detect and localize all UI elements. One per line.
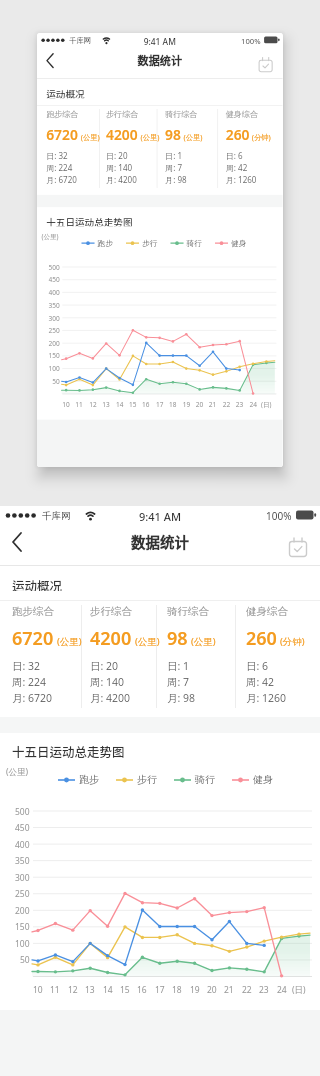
staticText: 300 [48, 314, 60, 322]
staticText: 20 [196, 400, 203, 408]
staticText: 200 [15, 905, 30, 916]
staticText: 13 [85, 984, 95, 995]
staticText: 周: 140 [106, 163, 133, 173]
staticText: 步行 [142, 238, 157, 248]
button[interactable] [2, 528, 36, 558]
staticText: 14 [103, 984, 113, 995]
staticText: 日: 1 [167, 659, 190, 673]
staticText: 运动概况 [12, 576, 63, 591]
staticText: 17 [156, 400, 164, 408]
staticText: 骑行 [195, 773, 215, 786]
staticText: 月: 1260 [226, 175, 257, 186]
staticText: (公里) [141, 132, 160, 142]
staticText: 跑步综合 [46, 109, 78, 119]
button[interactable]: 步行 [126, 238, 157, 248]
staticText: 运动概况 [46, 87, 85, 98]
staticText: 月: 98 [167, 691, 196, 705]
staticText: 21 [224, 984, 234, 995]
staticText: 24 [249, 400, 257, 408]
staticText: 9:41 AM [139, 509, 182, 523]
staticText: 350 [48, 301, 60, 309]
staticText: 16 [137, 984, 147, 995]
staticText: 350 [15, 855, 30, 866]
staticText: 日: 6 [226, 150, 243, 161]
staticText: 月: 6720 [12, 691, 53, 705]
button[interactable]: 步行 [116, 773, 157, 786]
staticText: 260 [226, 125, 249, 144]
button[interactable]: 跑步 [81, 238, 113, 248]
staticText: 骑行综合 [167, 605, 209, 618]
staticText: (分钟) [252, 132, 271, 142]
staticText: (公里) [81, 132, 100, 142]
staticText: (公里) [183, 132, 203, 142]
staticText: 50 [20, 954, 30, 965]
staticText: 250 [48, 326, 60, 334]
staticText: 14 [116, 400, 124, 408]
staticText: 10 [33, 984, 43, 995]
staticText: 6720 [46, 125, 78, 144]
staticText: 步行 [137, 773, 157, 786]
staticText: 100 [48, 364, 60, 373]
button[interactable]: 健身 [232, 773, 273, 786]
staticText: 150 [48, 351, 60, 360]
staticText: 骑行 [187, 238, 202, 248]
staticText: 11 [50, 984, 60, 995]
staticText: 17 [155, 984, 165, 995]
staticText: 15 [120, 984, 130, 995]
staticText: 千库网 [42, 510, 71, 522]
staticText: 12 [68, 984, 78, 995]
staticText: 13 [102, 400, 110, 408]
staticText: 健身 [231, 238, 246, 248]
staticText: (公里) [6, 766, 29, 778]
staticText: 健身综合 [226, 109, 258, 119]
staticText: 22 [242, 984, 252, 995]
staticText: 骑行综合 [165, 109, 197, 119]
staticText: (分钟) [280, 635, 305, 648]
staticText: 100 [15, 938, 30, 949]
staticText: 21 [209, 400, 217, 408]
staticText: 23 [236, 400, 243, 408]
staticText: 23 [259, 984, 269, 995]
staticText: 500 [48, 263, 60, 272]
staticText: (公里) [57, 635, 82, 648]
staticText: 4200 [106, 125, 138, 144]
staticText: 9:41 AM [144, 35, 177, 46]
staticText: 周: 224 [46, 163, 73, 173]
staticText: 500 [15, 806, 30, 817]
staticText: 18 [169, 400, 177, 408]
staticText: (日) [261, 400, 272, 408]
staticText: 数据统计 [137, 52, 182, 68]
staticText: 50 [52, 377, 60, 385]
staticText: 健身 [253, 773, 273, 786]
button[interactable] [38, 50, 65, 73]
staticText: 千库网 [69, 36, 91, 45]
staticText: 450 [48, 275, 60, 284]
staticText: 200 [48, 339, 60, 347]
staticText: 22 [223, 400, 230, 408]
staticText: 健身综合 [246, 605, 288, 618]
staticText: 月: 4200 [90, 691, 131, 705]
staticText: 10 [62, 400, 70, 408]
button[interactable] [255, 53, 278, 76]
staticText: 日: 6 [246, 659, 269, 673]
button[interactable]: 健身 [215, 238, 246, 248]
staticText: 跑步 [79, 773, 99, 786]
staticText: 月: 1260 [246, 691, 287, 705]
staticText: 周: 42 [246, 675, 275, 689]
button[interactable]: 骑行 [170, 238, 202, 248]
staticText: 十五日运动总走势图 [46, 214, 133, 226]
button[interactable]: 跑步 [58, 773, 99, 786]
staticText: 数据统计 [131, 531, 189, 552]
button[interactable] [284, 532, 314, 562]
staticText: 6720 [12, 626, 54, 651]
button[interactable]: 骑行 [174, 773, 215, 786]
staticText: 18 [172, 984, 182, 995]
staticText: 15 [129, 400, 137, 408]
staticText: (公里) [42, 232, 59, 242]
staticText: 20 [207, 984, 217, 995]
staticText: 16 [142, 400, 150, 408]
staticText: 100% [266, 509, 292, 523]
staticText: (日) [292, 984, 306, 995]
staticText: 300 [15, 872, 30, 883]
staticText: 周: 224 [12, 675, 47, 689]
